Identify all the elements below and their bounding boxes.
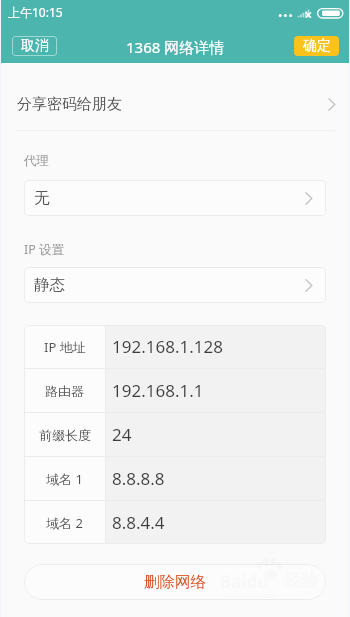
button[interactable]: 静态 [24, 267, 326, 303]
staticText: 1368 网络详情 [126, 37, 225, 57]
other: Open [305, 191, 314, 206]
staticText: 前缀长度 [39, 427, 91, 443]
staticText: 取消 [21, 37, 49, 55]
staticText: IP 地址 [44, 338, 86, 356]
staticText: www.baidu.com [224, 591, 277, 601]
other: Open [305, 278, 314, 293]
staticText: 8.8.8.8 [112, 467, 165, 490]
staticText: 域名 1 [46, 470, 83, 488]
staticText: IP 设置 [24, 241, 65, 258]
staticText: 分享密码给朋友 [17, 95, 122, 114]
staticText: 代理 [24, 153, 49, 169]
button[interactable]: 取消 [12, 36, 57, 56]
staticText: 路由器 [45, 383, 84, 399]
staticText: 8.8.4.4 [112, 511, 165, 534]
button[interactable]: 确定 [294, 36, 339, 56]
staticText: 192.168.1.128 [112, 335, 223, 358]
staticText: 24 [112, 423, 132, 446]
staticText: 上午10:15 [8, 4, 63, 20]
button[interactable]: 删除网络 [24, 564, 326, 600]
staticText: 删除网络 [144, 572, 206, 592]
other: Open [328, 97, 337, 112]
staticText: 192.168.1.1 [112, 379, 204, 402]
staticText: 静态 [34, 275, 65, 295]
button[interactable]: 无 [24, 180, 326, 216]
staticText: 域名 2 [46, 514, 83, 532]
staticText: 无 [34, 188, 50, 208]
other: Signal and battery status [278, 0, 350, 24]
button[interactable]: 分享密码给朋友 [0, 70, 350, 138]
staticText: 确定 [303, 37, 331, 55]
